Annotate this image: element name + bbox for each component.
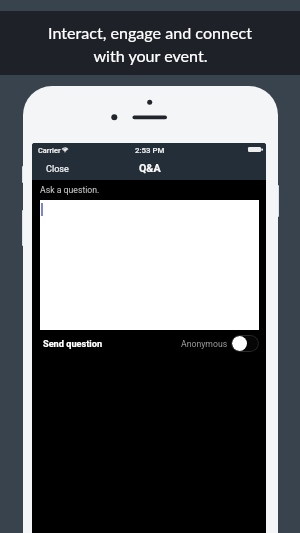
staticText: Anonymous <box>181 339 228 349</box>
button[interactable]: Anonymous toggle <box>181 335 266 352</box>
staticText: Close <box>46 164 69 175</box>
button[interactable]: Close <box>32 159 82 178</box>
staticText: Carrier <box>38 146 61 155</box>
staticText: Send question <box>43 338 103 349</box>
staticText: Q&A <box>139 162 161 175</box>
staticText: Interact, engage and connect <box>48 23 252 42</box>
button[interactable]: Send question <box>32 336 109 351</box>
staticText: with your event. <box>93 46 208 65</box>
staticText: Ask a question. <box>40 185 100 195</box>
staticText: 2:53 PM <box>135 146 165 155</box>
button[interactable] <box>40 200 259 330</box>
